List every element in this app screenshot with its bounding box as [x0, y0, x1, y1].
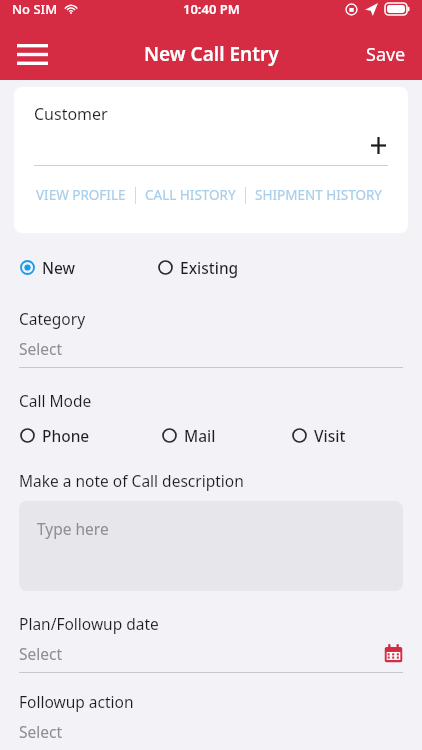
button[interactable]: Save	[350, 32, 422, 77]
staticText: Customer	[34, 103, 108, 125]
button[interactable]: Select	[19, 329, 403, 368]
staticText: New	[42, 257, 76, 278]
staticText: SHIPMENT HISTORY	[255, 186, 382, 204]
staticText: Category	[19, 308, 86, 329]
staticText: Make a note of Call description	[19, 470, 244, 491]
button[interactable]: CALL HISTORY	[143, 183, 238, 207]
staticText: Visit	[314, 425, 346, 446]
button[interactable]: VIEW PROFILE	[34, 183, 128, 207]
button[interactable]: New	[20, 253, 76, 282]
staticText: Type here	[37, 518, 109, 539]
staticText: Followup action	[19, 691, 134, 712]
other: Pick date	[384, 644, 403, 663]
staticText: Save	[366, 42, 406, 67]
staticText: Existing	[180, 257, 239, 278]
staticText: Phone	[42, 425, 90, 446]
button[interactable]: SHIPMENT HISTORY	[253, 183, 384, 207]
button[interactable]: Select	[19, 634, 403, 673]
button[interactable]: Visit	[292, 421, 346, 450]
staticText: Call Mode	[19, 390, 92, 411]
staticText: Select	[19, 643, 63, 664]
button[interactable]: Existing	[158, 253, 239, 282]
staticText: New Call Entry	[144, 41, 279, 67]
staticText: No SIM	[12, 0, 58, 18]
button[interactable]: Type here	[19, 501, 403, 591]
staticText: Select	[19, 721, 63, 742]
staticText: 10:40 PM	[183, 0, 240, 18]
button[interactable]: Menu	[8, 30, 56, 78]
staticText: Select	[19, 338, 63, 359]
button[interactable]: Add customer	[34, 125, 388, 165]
staticText: VIEW PROFILE	[36, 186, 126, 204]
button[interactable]: Mail	[162, 421, 216, 450]
button[interactable]: Select	[19, 712, 403, 750]
staticText: Plan/Followup date	[19, 613, 159, 634]
button[interactable]: Phone	[20, 421, 90, 450]
staticText: CALL HISTORY	[145, 186, 236, 204]
staticText: Mail	[184, 425, 216, 446]
